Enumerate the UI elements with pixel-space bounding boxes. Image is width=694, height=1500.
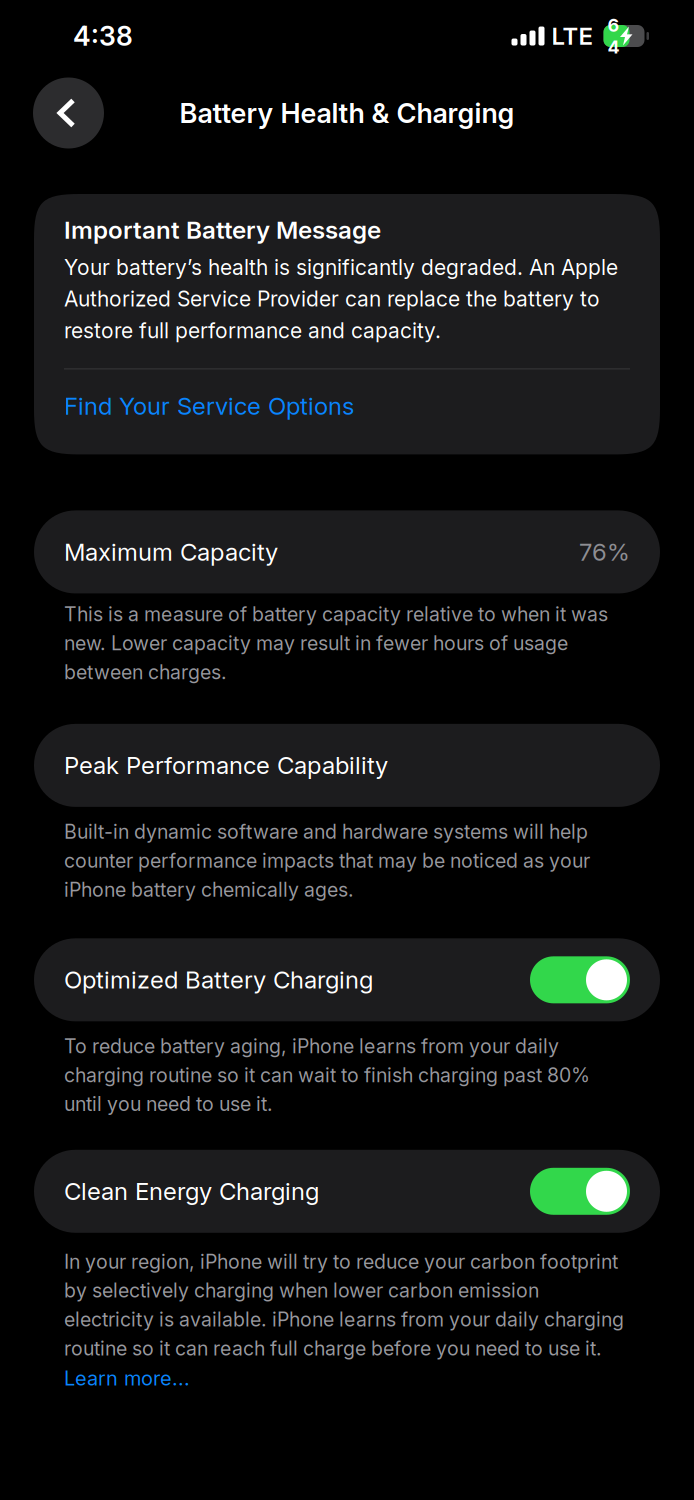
staticText: 64 — [607, 14, 619, 58]
staticText: Built-in dynamic software and hardware s… — [64, 820, 590, 901]
staticText: 76% — [579, 537, 630, 566]
staticText: Find Your Service Options — [64, 391, 354, 420]
staticText: In your region, iPhone will try to reduc… — [64, 1250, 624, 1360]
button[interactable]: Optimized Battery Charging — [0, 938, 694, 1021]
staticText: 4:38 — [73, 20, 133, 52]
button[interactable]: Find Your Service Options — [64, 369, 630, 454]
staticText: Important Battery Message — [64, 215, 381, 244]
staticText: Peak Performance Capability — [64, 751, 388, 780]
staticText: Learn more... — [64, 1366, 190, 1390]
button[interactable]: Learn more... — [0, 1360, 694, 1390]
button[interactable]: Back — [33, 77, 104, 148]
staticText: Clean Energy Charging — [64, 1177, 319, 1206]
staticText: Battery Health & Charging — [179, 96, 514, 130]
button[interactable]: Maximum Capacity — [0, 510, 694, 593]
staticText: This is a measure of battery capacity re… — [64, 602, 608, 684]
button[interactable]: Peak Performance Capability — [0, 724, 694, 807]
staticText: Your battery’s health is significantly d… — [64, 254, 618, 343]
button[interactable]: Clean Energy Charging — [0, 1150, 694, 1233]
staticText: To reduce battery aging, iPhone learns f… — [64, 1034, 590, 1116]
staticText: LTE — [551, 21, 592, 50]
staticText: Maximum Capacity — [64, 537, 278, 566]
staticText: Optimized Battery Charging — [64, 965, 373, 994]
